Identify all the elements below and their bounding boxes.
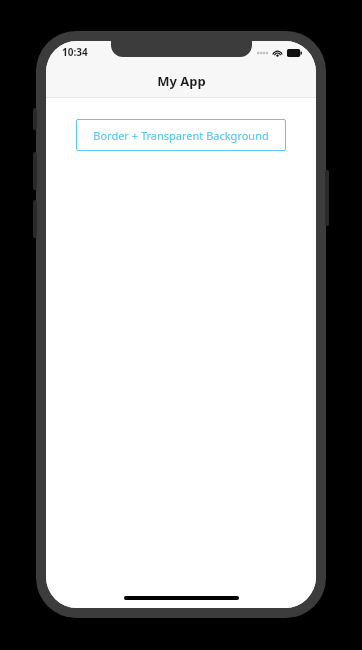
staticText: 10:34 [62, 45, 88, 59]
staticText: My App [157, 72, 206, 90]
button[interactable]: Border + Transparent Background [76, 119, 286, 151]
staticText: Border + Transparent Background [93, 128, 269, 143]
